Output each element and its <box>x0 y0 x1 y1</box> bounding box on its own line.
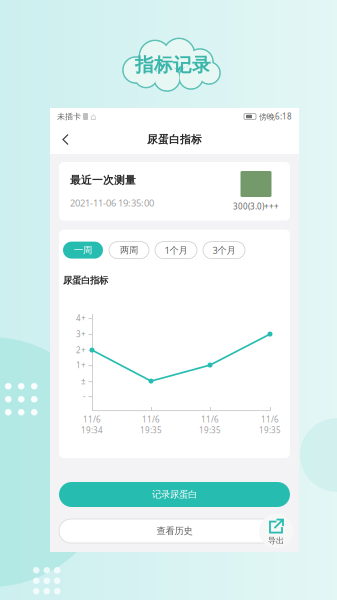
staticText: - <box>83 391 86 401</box>
button[interactable]: 导出 <box>259 514 293 548</box>
staticText: 11/6 <box>83 414 101 425</box>
staticText: 查看历史 <box>156 525 192 537</box>
staticText: 3个月 <box>212 244 235 256</box>
staticText: 一周 <box>74 244 92 256</box>
staticText: 2+ <box>76 345 86 355</box>
staticText: 19:34 <box>81 425 103 435</box>
button[interactable]: 一周 <box>63 242 103 259</box>
staticText: 尿蛋白指标 <box>147 133 202 146</box>
staticText: 19:35 <box>199 425 221 435</box>
staticText: 11/6 <box>261 414 279 425</box>
staticText: 3+ <box>76 329 86 339</box>
button[interactable]: 1个月 <box>155 242 197 259</box>
button[interactable]: 返回 <box>54 125 78 153</box>
staticText: 1个月 <box>164 244 187 256</box>
staticText: 指标记录 <box>135 53 211 76</box>
staticText: 最近一次测量 <box>70 174 136 187</box>
staticText: 19:35 <box>140 425 162 435</box>
staticText: 19:35 <box>259 425 281 435</box>
button[interactable]: 记录尿蛋白 <box>59 482 290 507</box>
staticText: 2021-11-06 19:35:00 <box>70 197 154 209</box>
staticText: 300(3.0)+++ <box>233 201 279 212</box>
staticText: 傍晚6:18 <box>259 111 292 122</box>
staticText: 两周 <box>120 244 138 256</box>
staticText: ± <box>81 376 86 386</box>
button[interactable]: 查看历史 <box>59 519 290 543</box>
staticText: ⌂ <box>90 111 96 122</box>
staticText: 1+ <box>76 360 86 370</box>
staticText: 11/6 <box>142 414 160 425</box>
staticText: 记录尿蛋白 <box>152 489 197 500</box>
staticText: 11/6 <box>201 414 219 425</box>
staticText: 未插卡 <box>57 112 81 121</box>
button[interactable]: 3个月 <box>203 242 245 259</box>
staticText: 尿蛋白指标 <box>63 275 108 286</box>
button[interactable]: 两周 <box>109 242 149 259</box>
staticText: 导出 <box>268 536 284 545</box>
staticText: 4+ <box>76 313 86 323</box>
